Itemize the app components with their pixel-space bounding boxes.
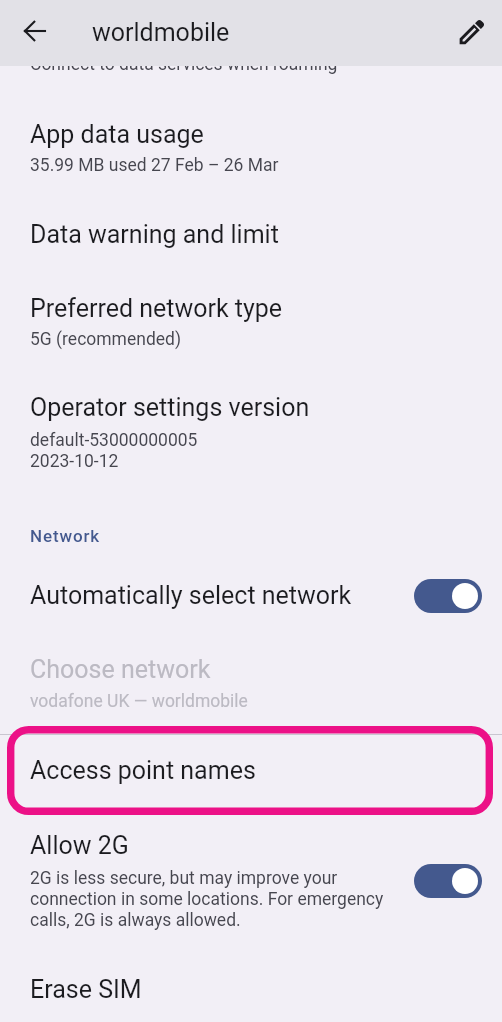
button[interactable]: Navigate up [6,0,64,64]
button[interactable]: Toggle [414,864,482,898]
button[interactable] [0,824,502,946]
button[interactable] [0,960,502,1022]
staticText: worldmobile [92,18,230,47]
staticText: Automatically select network [30,581,352,610]
staticText: 35.99 MB used 27 Feb – 26 Mar [30,155,279,176]
button[interactable] [0,566,502,642]
staticText: Connect to data services when roaming [30,54,338,75]
button[interactable]: Toggle [414,579,482,613]
staticText: Choose network [30,655,211,684]
staticText: App data usage [30,120,204,149]
staticText: default-53000000005 [30,430,198,451]
button[interactable] [0,376,502,494]
button[interactable] [0,96,502,196]
staticText: vodafone UK — worldmobile [30,691,248,712]
button[interactable] [0,200,502,272]
staticText: Erase SIM [30,975,142,1004]
staticText: 2G is less secure, but may improve your … [30,867,384,930]
staticText: Access point names [30,756,256,785]
staticText: Operator settings version [30,393,310,422]
staticText: Allow 2G [30,831,129,860]
staticText: Preferred network type [30,294,283,323]
staticText: 5G (recommended) [30,329,182,350]
staticText: Data warning and limit [30,220,279,249]
button[interactable]: Edit name [443,0,501,65]
button[interactable] [0,276,502,372]
button[interactable] [0,646,502,722]
button[interactable] [7,726,493,815]
staticText: Network [30,526,100,546]
staticText: 2023-10-12 [30,451,119,472]
